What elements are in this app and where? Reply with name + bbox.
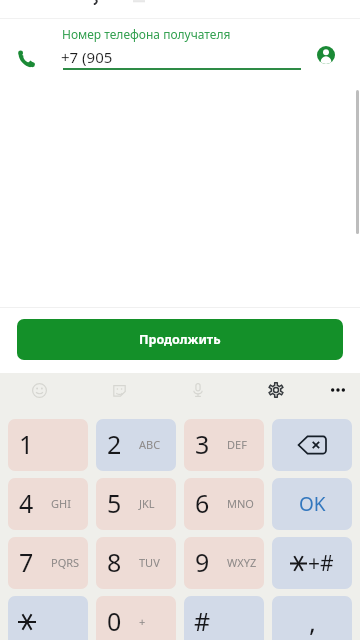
staticText: , xyxy=(309,604,316,639)
button[interactable]: Продолжить xyxy=(17,319,343,360)
button[interactable]: 1 xyxy=(8,419,88,471)
button[interactable]: More options xyxy=(321,373,355,407)
staticText: OK xyxy=(299,491,326,517)
staticText: 9 xyxy=(195,545,210,579)
staticText: WXYZ xyxy=(227,555,257,570)
button[interactable]: , xyxy=(272,596,352,640)
staticText: 6 xyxy=(195,486,210,520)
button[interactable]: Emoji xyxy=(22,373,56,407)
staticText: TUV xyxy=(139,555,160,570)
staticText: 5 xyxy=(107,486,122,520)
button[interactable]: Symbols xyxy=(272,537,352,589)
button[interactable]: Stickers xyxy=(102,373,136,407)
staticText: GHI xyxy=(51,496,71,511)
staticText: JKL xyxy=(139,496,155,511)
staticText: 1 xyxy=(19,427,34,461)
button[interactable]: Choose contact xyxy=(309,38,342,71)
staticText: DEF xyxy=(227,437,247,452)
staticText: # xyxy=(194,604,211,638)
button[interactable]: Star xyxy=(8,596,88,640)
button[interactable]: Keyboard settings xyxy=(259,373,293,407)
staticText: +7 (905 xyxy=(61,47,113,67)
button[interactable]: Backspace xyxy=(272,419,352,471)
staticText: Номер телефона получателя xyxy=(62,26,231,42)
staticText: 4 xyxy=(19,486,34,520)
staticText: +# xyxy=(308,549,334,578)
staticText: ABC xyxy=(139,437,161,452)
other: Symbols xyxy=(272,537,352,589)
button[interactable]: 2 xyxy=(96,419,176,471)
staticText: 7 xyxy=(19,545,34,579)
other: Backspace xyxy=(272,419,352,471)
staticText: PQRS xyxy=(51,555,80,570)
button[interactable]: 6 xyxy=(184,478,264,530)
staticText: 2 xyxy=(107,427,122,461)
other: Star xyxy=(14,596,39,640)
button[interactable]: 5 xyxy=(96,478,176,530)
staticText: + xyxy=(139,614,146,629)
button[interactable]: # xyxy=(184,596,264,640)
button[interactable]: 3 xyxy=(184,419,264,471)
button[interactable]: 9 xyxy=(184,537,264,589)
button[interactable]: 0 xyxy=(96,596,176,640)
button[interactable]: Voice input xyxy=(181,373,215,407)
button[interactable]: OK xyxy=(272,478,352,530)
staticText: 3 xyxy=(195,427,210,461)
button[interactable]: 4 xyxy=(8,478,88,530)
button[interactable]: 8 xyxy=(96,537,176,589)
button[interactable]: 7 xyxy=(8,537,88,589)
staticText: 8 xyxy=(107,545,122,579)
staticText: Продолжить xyxy=(139,331,221,348)
staticText: MNO xyxy=(227,496,254,511)
staticText: 0 xyxy=(107,604,122,638)
button[interactable]: Call xyxy=(12,44,40,72)
